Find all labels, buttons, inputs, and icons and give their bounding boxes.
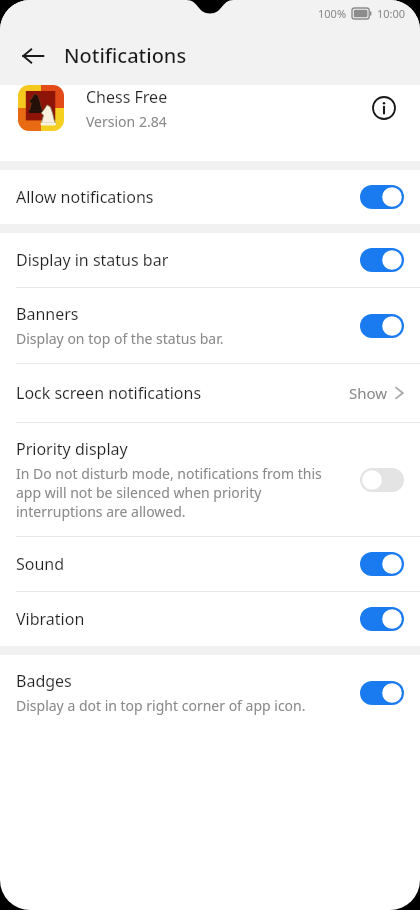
staticText: Version 2.84 xyxy=(86,112,167,131)
staticText: Notifications xyxy=(64,42,187,69)
staticText: Show xyxy=(349,383,388,403)
button[interactable]: On xyxy=(360,552,404,576)
button[interactable]: Vibration xyxy=(0,592,420,646)
staticText: Display in status bar xyxy=(16,249,169,271)
button[interactable]: Allow notifications xyxy=(0,170,420,224)
staticText: Display a dot in top right corner of app… xyxy=(16,696,306,715)
staticText: Priority display xyxy=(16,438,128,460)
staticText: In Do not disturb mode, notifications fr… xyxy=(16,464,346,521)
button[interactable]: Banners xyxy=(0,288,420,363)
button[interactable]: Badges xyxy=(0,655,420,730)
staticText: 100% xyxy=(318,6,347,21)
button[interactable]: Off xyxy=(360,468,404,492)
staticText: Banners xyxy=(16,303,79,325)
button[interactable]: Back xyxy=(13,36,53,76)
staticText: Vibration xyxy=(16,608,85,630)
button[interactable]: Sound xyxy=(0,537,420,591)
button[interactable]: Lock screen notifications xyxy=(0,364,420,422)
button[interactable]: On xyxy=(360,607,404,631)
button[interactable]: App info xyxy=(362,86,406,130)
staticText: Chess Free xyxy=(86,86,168,108)
button[interactable]: Display in status bar xyxy=(0,233,420,287)
staticText: Badges xyxy=(16,670,72,692)
staticText: Allow notifications xyxy=(16,186,154,208)
button[interactable]: On xyxy=(360,314,404,338)
button[interactable]: On xyxy=(360,248,404,272)
staticText: Lock screen notifications xyxy=(16,382,349,404)
staticText: Sound xyxy=(16,553,65,575)
button[interactable]: On xyxy=(360,185,404,209)
button[interactable]: On xyxy=(360,681,404,705)
staticText: 10:00 xyxy=(377,6,406,21)
button[interactable]: Priority display xyxy=(0,423,420,536)
staticText: Display on top of the status bar. xyxy=(16,329,224,348)
